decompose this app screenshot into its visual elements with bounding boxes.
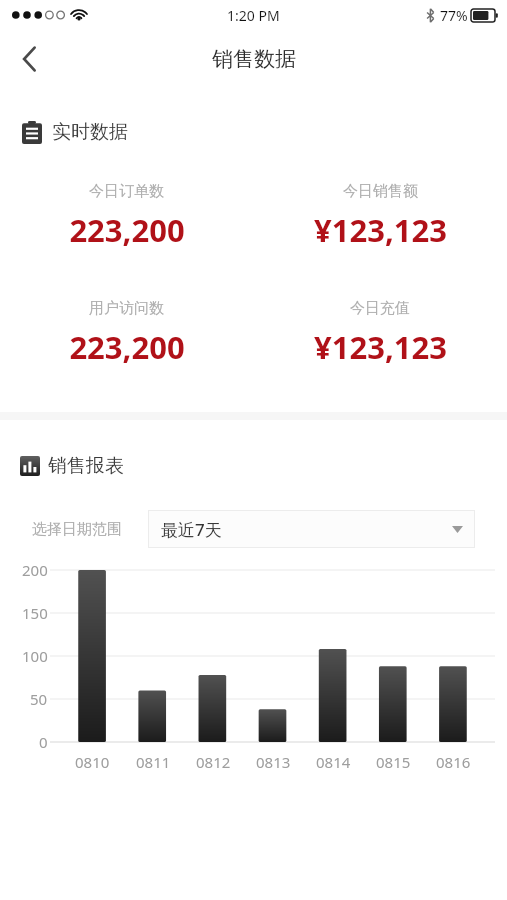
- staticText: 223,200: [69, 326, 185, 368]
- staticText: ¥123,123: [314, 209, 447, 251]
- staticText: 销售数据: [212, 46, 296, 72]
- button[interactable]: 今日销售额: [253, 182, 507, 251]
- button[interactable]: 销售报表: [20, 454, 507, 478]
- staticText: ¥123,123: [314, 326, 447, 368]
- staticText: 50: [30, 689, 48, 709]
- staticText: 100: [22, 646, 48, 666]
- staticText: 1:20 PM: [227, 6, 280, 25]
- staticText: 223,200: [69, 209, 185, 251]
- staticText: 0815: [376, 752, 411, 772]
- staticText: 0813: [256, 752, 291, 772]
- button[interactable]: 最近7天: [148, 510, 475, 548]
- staticText: 200: [22, 560, 48, 580]
- staticText: 销售报表: [48, 454, 124, 478]
- staticText: 0811: [136, 752, 171, 772]
- button[interactable]: 用户访问数: [0, 299, 253, 368]
- staticText: 150: [22, 603, 48, 623]
- staticText: 今日充值: [350, 299, 410, 318]
- staticText: 0: [39, 732, 48, 752]
- staticText: 用户访问数: [89, 299, 164, 318]
- button[interactable]: 今日订单数: [0, 182, 253, 251]
- staticText: 0814: [316, 752, 351, 772]
- staticText: 0810: [75, 752, 110, 772]
- staticText: 0816: [436, 752, 471, 772]
- button[interactable]: Back: [4, 34, 54, 84]
- staticText: 0812: [196, 752, 231, 772]
- staticText: 77%: [440, 6, 468, 25]
- staticText: 实时数据: [52, 120, 128, 144]
- staticText: 今日销售额: [343, 182, 418, 201]
- staticText: 选择日期范围: [32, 520, 122, 539]
- staticText: 最近7天: [161, 518, 222, 541]
- staticText: 今日订单数: [89, 182, 164, 201]
- button[interactable]: 实时数据: [22, 120, 507, 144]
- button[interactable]: 今日充值: [253, 299, 507, 368]
